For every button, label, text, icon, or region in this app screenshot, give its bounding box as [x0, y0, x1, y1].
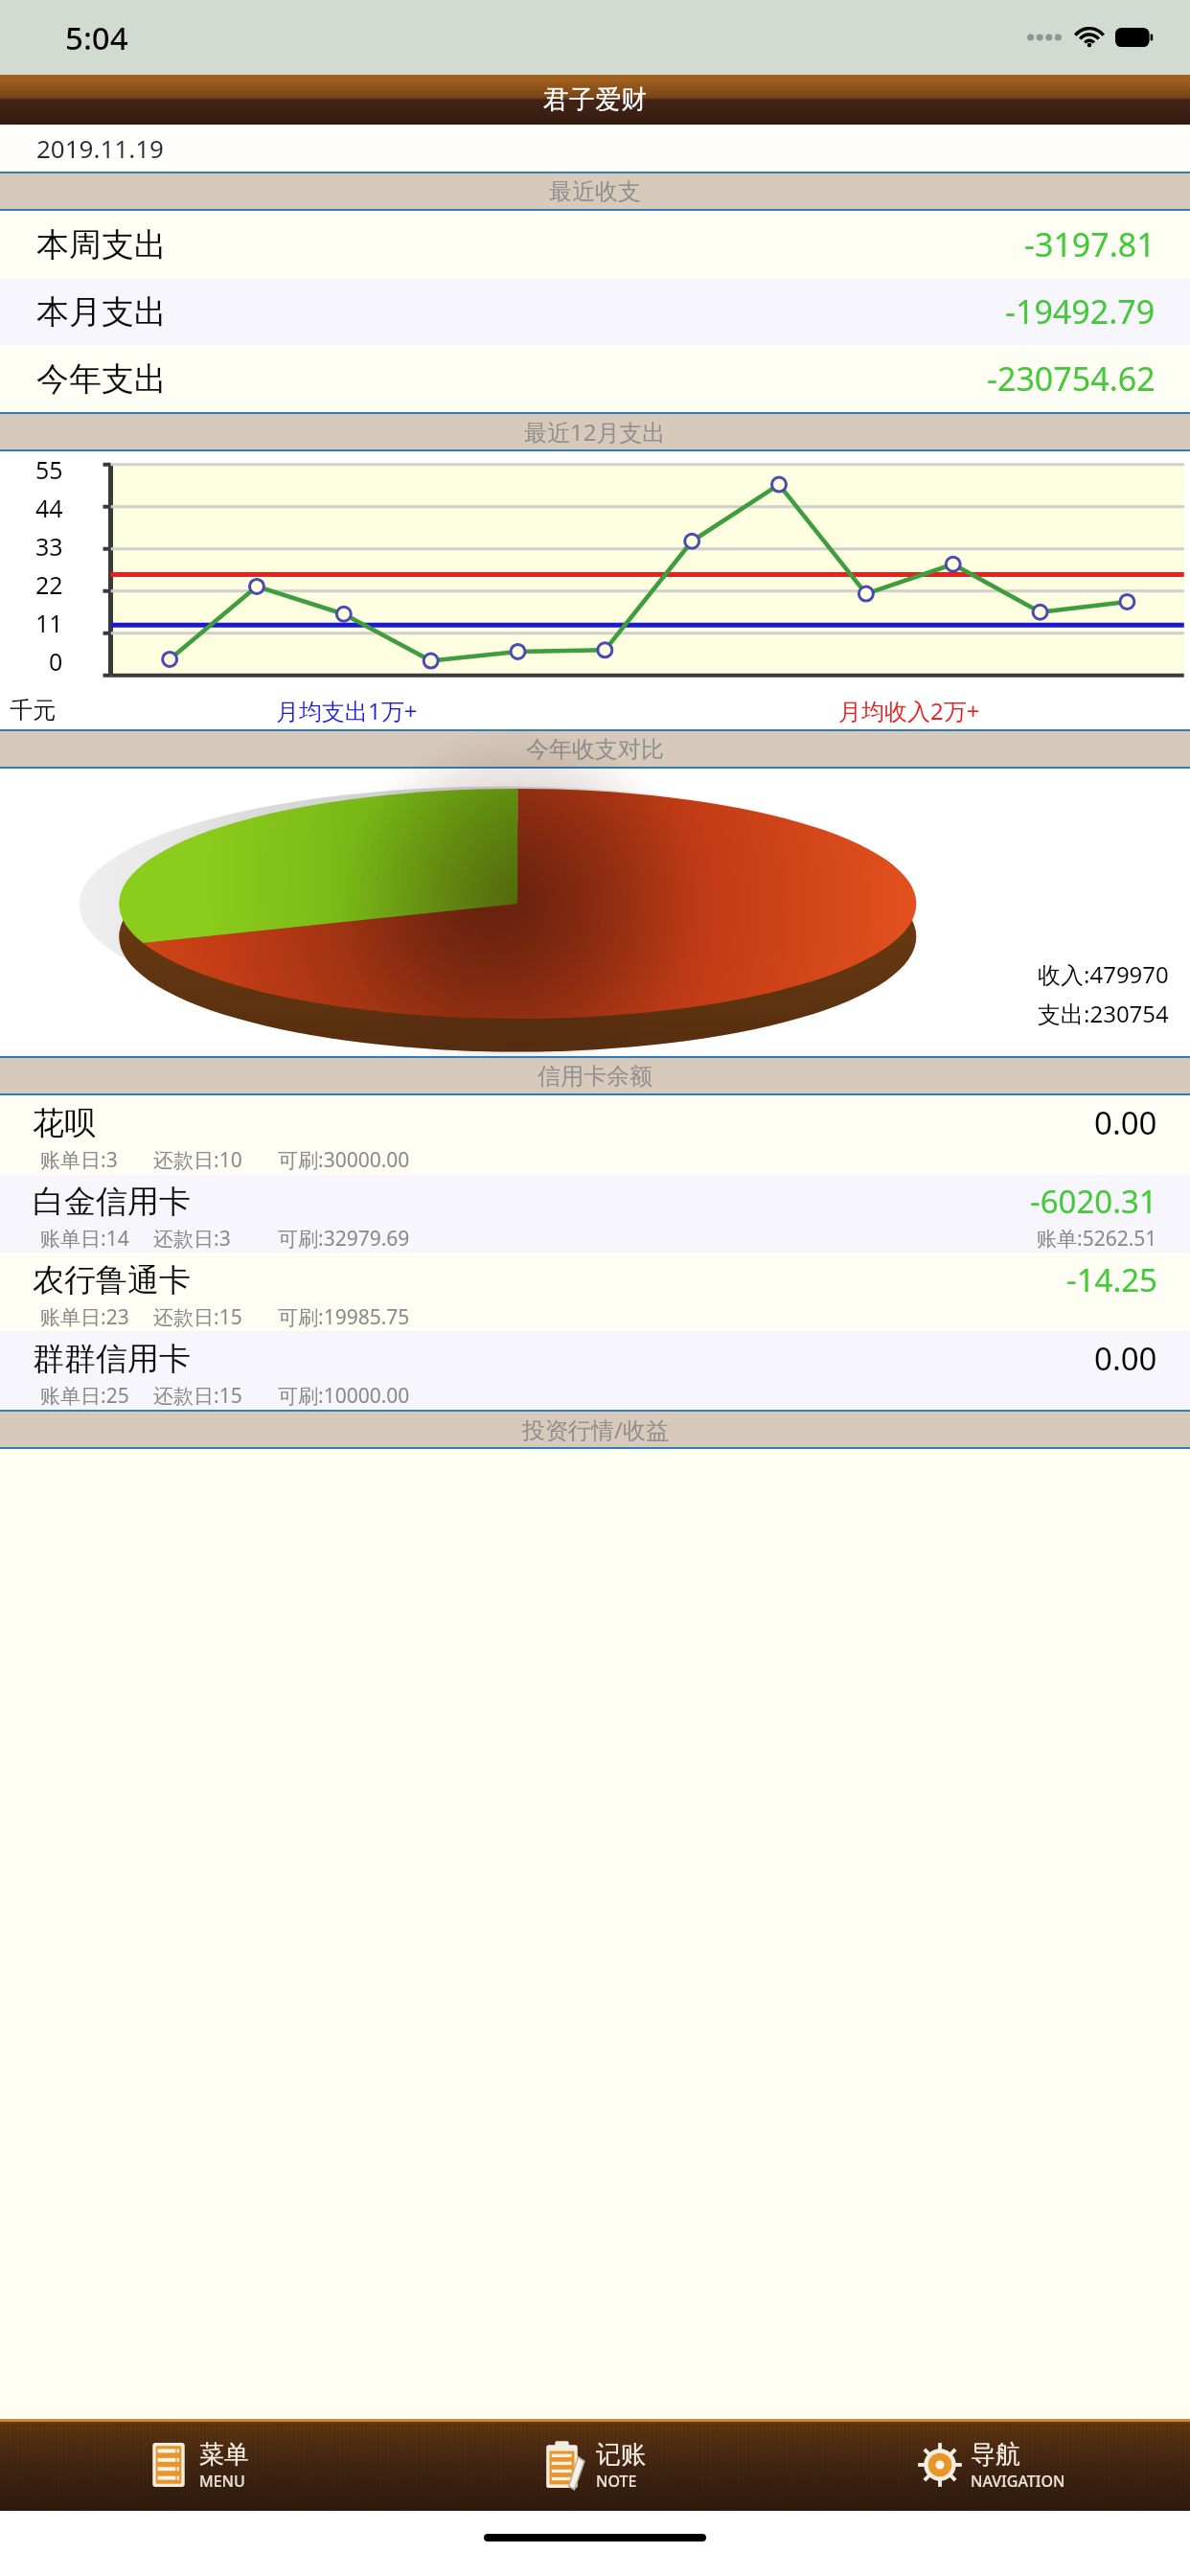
button[interactable]: 白金信用卡 — [0, 1174, 1190, 1253]
staticText: 33 — [35, 530, 63, 563]
button[interactable]: 2019.11.19 — [0, 125, 1190, 172]
staticText: 群群信用卡 — [33, 1339, 191, 1379]
button[interactable]: 本月支出 — [0, 278, 1190, 345]
staticText: 最近收支 — [549, 177, 641, 206]
staticText: 55 — [35, 453, 63, 486]
staticText: 0.00 — [1094, 1101, 1157, 1144]
staticText: 今年收支对比 — [526, 735, 664, 764]
staticText: 支出:230754 — [1038, 998, 1169, 1029]
staticText: 2019.11.19 — [36, 131, 164, 165]
staticText: 还款日:15 — [153, 1303, 278, 1331]
staticText: 农行鲁通卡 — [33, 1260, 191, 1300]
staticText: 可刷:30000.00 — [278, 1146, 410, 1174]
button[interactable]: 55 — [0, 451, 1190, 729]
staticText: -3197.81 — [1024, 222, 1156, 266]
staticText: 投资行情/收益 — [522, 1414, 669, 1445]
staticText: 账单日:3 — [40, 1146, 153, 1174]
staticText: 账单:5262.51 — [1037, 1225, 1157, 1253]
button[interactable]: 群群信用卡 — [0, 1331, 1190, 1410]
staticText: 月均收入2万+ — [838, 695, 980, 726]
staticText: 22 — [35, 568, 63, 601]
staticText: -230754.62 — [987, 356, 1156, 401]
staticText: 月均支出1万+ — [276, 695, 418, 726]
button[interactable]: 收入:479970 — [0, 769, 1190, 1056]
staticText: 还款日:10 — [153, 1146, 278, 1174]
staticText: MENU — [199, 2471, 245, 2492]
staticText: 可刷:32979.69 — [278, 1225, 410, 1253]
staticText: 账单日:25 — [40, 1382, 153, 1410]
staticText: 账单日:14 — [40, 1225, 153, 1253]
staticText: -14.25 — [1066, 1258, 1157, 1301]
staticText: 5:04 — [65, 16, 128, 59]
staticText: 账单日:23 — [40, 1303, 153, 1331]
staticText: 信用卡余额 — [538, 1062, 652, 1091]
staticText: 菜单 — [199, 2439, 249, 2471]
staticText: -6020.31 — [1030, 1180, 1157, 1223]
button[interactable]: 记账 — [397, 2419, 793, 2511]
staticText: 11 — [35, 607, 63, 639]
staticText: 收入:479970 — [1038, 958, 1169, 990]
staticText: 本月支出 — [36, 291, 167, 333]
staticText: 还款日:3 — [153, 1225, 278, 1253]
staticText: 44 — [35, 492, 63, 524]
staticText: 最近12月支出 — [524, 416, 666, 448]
button[interactable]: 本周支出 — [0, 211, 1190, 278]
staticText: 今年支出 — [36, 358, 167, 400]
staticText: 可刷:19985.75 — [278, 1303, 410, 1331]
staticText: 还款日:15 — [153, 1382, 278, 1410]
staticText: 0.00 — [1094, 1337, 1157, 1380]
staticText: 千元 — [10, 696, 56, 724]
staticText: 君子爱财 — [543, 83, 647, 116]
staticText: 花呗 — [33, 1103, 96, 1143]
button[interactable]: 农行鲁通卡 — [0, 1253, 1190, 1331]
staticText: 导航 — [971, 2439, 1020, 2471]
staticText: NOTE — [596, 2471, 637, 2492]
staticText: NAVIGATION — [971, 2471, 1065, 2492]
button[interactable]: 花呗 — [0, 1095, 1190, 1174]
staticText: 白金信用卡 — [33, 1182, 191, 1222]
button[interactable]: 今年支出 — [0, 345, 1190, 412]
button[interactable]: 菜单 — [0, 2419, 397, 2511]
staticText: 可刷:10000.00 — [278, 1382, 410, 1410]
staticText: 记账 — [596, 2439, 646, 2471]
staticText: 0 — [49, 645, 63, 678]
button[interactable]: 导航 — [793, 2419, 1190, 2511]
staticText: -19492.79 — [1005, 289, 1156, 333]
staticText: 本周支出 — [36, 224, 167, 265]
